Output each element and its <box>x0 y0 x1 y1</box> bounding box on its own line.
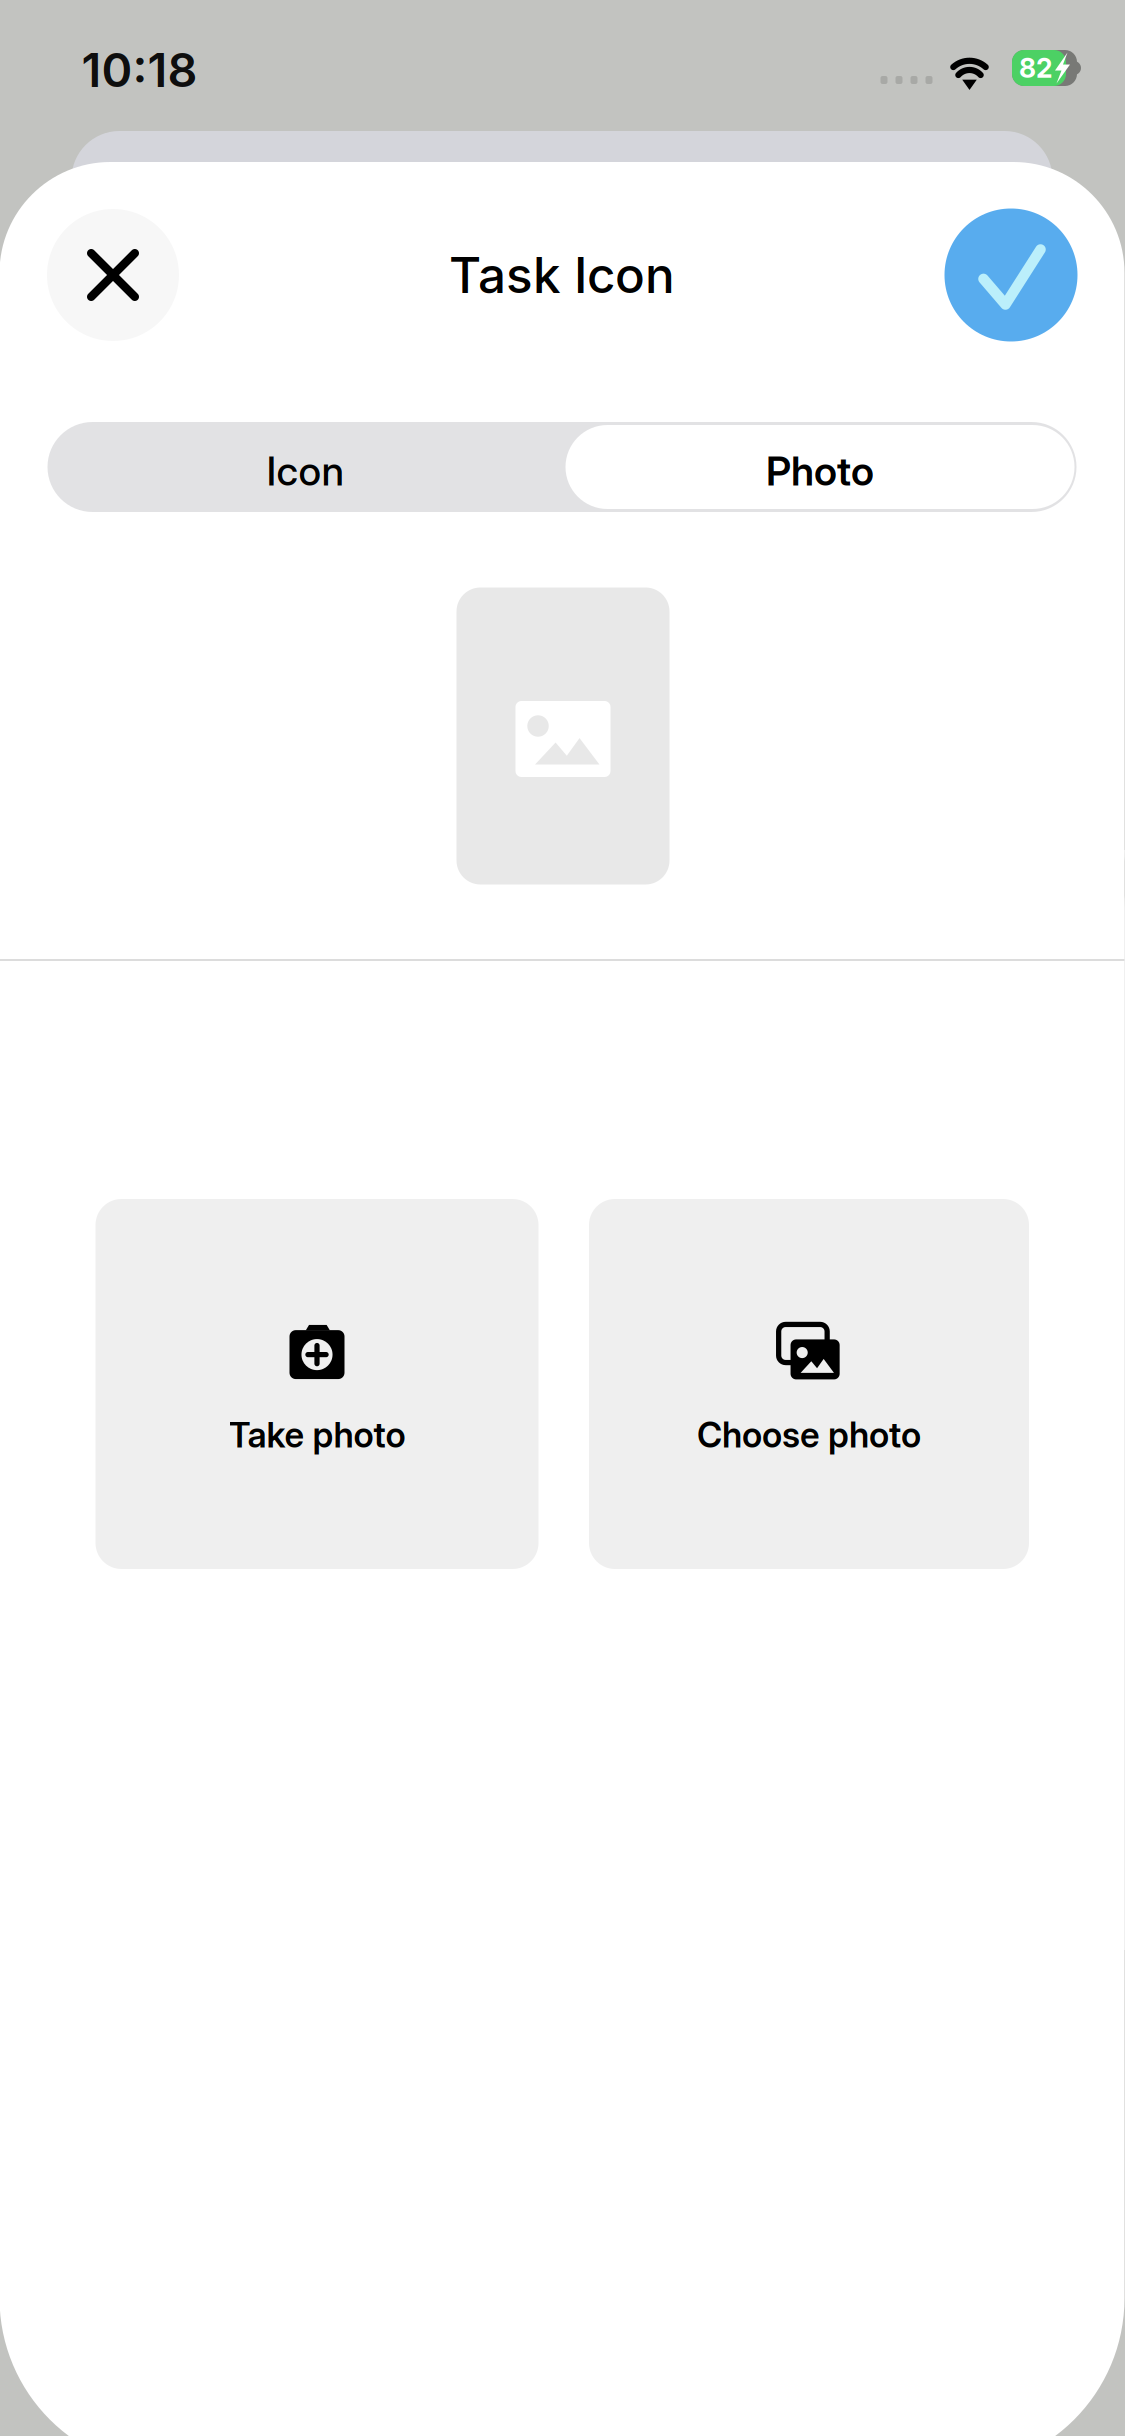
button[interactable]: Photo <box>563 422 1076 512</box>
button[interactable]: Close <box>47 209 179 341</box>
button[interactable]: Choose photo <box>589 1199 1029 1569</box>
staticText: Choose photo <box>697 1414 921 1456</box>
button[interactable]: Icon <box>47 422 563 512</box>
staticText: Icon <box>266 447 344 495</box>
button[interactable]: Done <box>944 208 1077 341</box>
button[interactable]: Take photo <box>95 1199 538 1569</box>
staticText: 82 <box>1019 52 1053 84</box>
staticText: Take photo <box>228 1414 405 1456</box>
staticText: Photo <box>766 447 874 495</box>
staticText: Task Icon <box>449 245 675 305</box>
staticText: 10:18 <box>81 42 197 98</box>
